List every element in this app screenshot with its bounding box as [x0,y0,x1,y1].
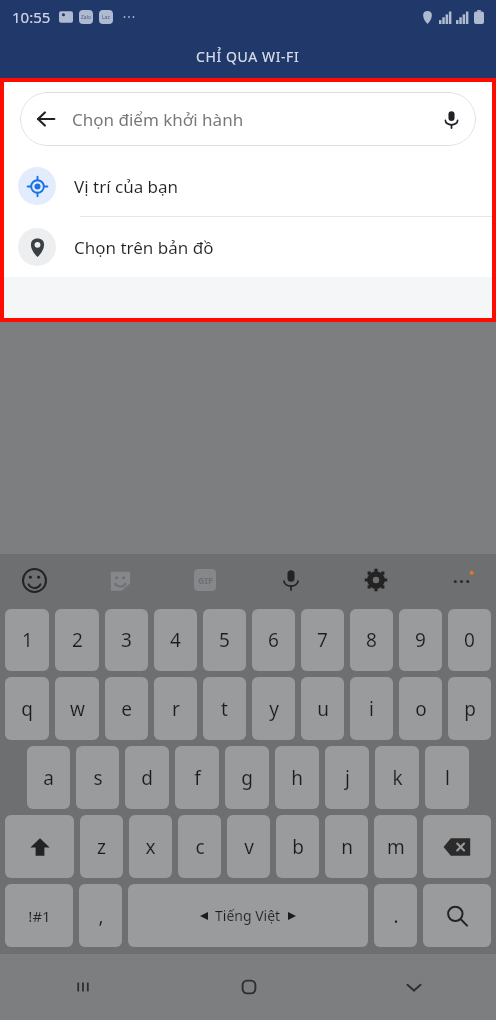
button[interactable]: 9 [399,609,442,671]
button[interactable]: g [225,746,269,809]
button[interactable]: Voice input [271,560,311,600]
staticText: 0 [464,627,475,653]
staticText: k [392,765,403,791]
button[interactable]: More options [442,560,482,600]
staticText: 2 [72,627,83,653]
button[interactable]: t [203,677,246,740]
button[interactable]: u [301,677,344,740]
button[interactable]: Tiếng Việt [128,884,368,947]
button[interactable]: GIF [185,560,225,600]
button[interactable]: 2 [55,609,99,671]
button[interactable]: Shift [5,815,74,878]
button[interactable]: m [374,815,417,878]
button[interactable]: e [105,677,148,740]
button[interactable]: h [275,746,319,809]
button[interactable]: y [252,677,295,740]
button[interactable]: Keyboard settings [356,560,396,600]
staticText: z [97,834,106,860]
button[interactable]: !#1 [5,884,73,947]
button[interactable]: b [276,815,319,878]
staticText: Tiếng Việt [215,906,281,925]
button[interactable]: f [175,746,219,809]
staticText: e [121,696,132,722]
button[interactable]: Chọn trên bản đồ [4,217,492,277]
staticText: 6 [268,627,279,653]
button[interactable]: x [129,815,172,878]
button[interactable]: w [55,677,99,740]
button[interactable]: Backspace [423,815,491,878]
button[interactable]: r [154,677,197,740]
staticText: u [317,696,329,722]
button[interactable]: 7 [301,609,344,671]
staticText: w [70,696,85,722]
staticText: !#1 [28,906,51,926]
button[interactable]: Recents [0,954,166,1020]
button[interactable]: c [178,815,221,878]
staticText: o [415,696,427,722]
button[interactable]: Home [166,954,331,1020]
button[interactable]: d [125,746,169,809]
staticText: CHỈ QUA WI-FI [196,47,300,66]
button[interactable]: z [80,815,123,878]
staticText: g [241,765,253,791]
button[interactable]: Back [20,93,72,145]
button[interactable]: Vị trí của bạn [4,156,492,216]
staticText: v [244,834,254,860]
staticText: Chọn điểm khởi hành [72,108,426,131]
button[interactable]: Back [20,92,476,146]
staticText: p [464,696,476,722]
staticText: j [345,765,350,791]
staticText: d [141,765,153,791]
staticText: Vị trí của bạn [74,175,179,198]
staticText: i [369,696,374,722]
button[interactable]: Hide keyboard [331,954,496,1020]
staticText: 7 [317,627,328,653]
staticText: 4 [170,627,181,653]
staticText: x [145,834,156,860]
staticText: f [194,765,201,791]
button[interactable]: 1 [5,609,49,671]
staticText: c [195,834,205,860]
button[interactable]: . [374,884,417,947]
staticText: 3 [121,627,132,653]
staticText: GIF [198,574,213,586]
button[interactable]: i [350,677,393,740]
staticText: Zalo [81,14,91,21]
staticText: n [341,834,353,860]
staticText: , [98,903,104,929]
button[interactable]: 5 [203,609,246,671]
button[interactable]: Voice search [426,94,476,144]
staticText: t [221,696,228,722]
button[interactable]: s [76,746,119,809]
staticText: q [21,696,33,722]
staticText: 10:55 [12,7,51,27]
button[interactable]: j [325,746,369,809]
button[interactable]: p [448,677,491,740]
button[interactable]: a [27,746,70,809]
button[interactable]: Stickers [100,560,140,600]
staticText: 8 [366,627,377,653]
button[interactable]: 8 [350,609,393,671]
staticText: l [445,765,450,791]
button[interactable]: n [325,815,368,878]
staticText: Laz [102,14,110,21]
button[interactable]: Emoji [14,560,54,600]
button[interactable]: 3 [105,609,148,671]
button[interactable]: q [5,677,49,740]
staticText: m [387,834,405,860]
staticText: a [43,765,54,791]
button[interactable]: 0 [448,609,491,671]
button[interactable]: 4 [154,609,197,671]
staticText: b [292,834,304,860]
staticText: 1 [22,627,33,653]
button[interactable]: Search [423,884,491,947]
staticText: 9 [415,627,426,653]
button[interactable]: v [227,815,270,878]
button[interactable]: k [375,746,419,809]
staticText: Chọn trên bản đồ [74,236,214,259]
button[interactable]: 6 [252,609,295,671]
button[interactable]: o [399,677,442,740]
button[interactable]: , [79,884,122,947]
button[interactable]: l [425,746,469,809]
staticText: y [269,696,279,722]
